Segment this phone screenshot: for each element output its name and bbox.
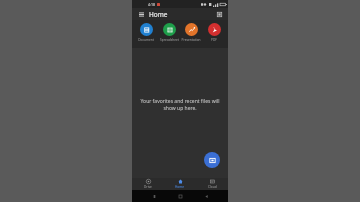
button[interactable]: Presentation	[180, 23, 202, 42]
button[interactable]: Back	[202, 192, 210, 200]
button[interactable]: Recent apps	[150, 192, 158, 200]
staticText: Cloud	[208, 185, 217, 189]
button[interactable]: Home	[176, 192, 184, 200]
button[interactable]: Home	[164, 178, 196, 190]
button[interactable]: Cloud	[196, 178, 228, 190]
staticText: Drive	[144, 185, 152, 189]
button[interactable]: Spreadsheet	[158, 23, 180, 42]
staticText: Presentation	[181, 38, 201, 42]
button[interactable]: Drive	[132, 178, 164, 190]
staticText: PDF	[211, 38, 217, 42]
button[interactable]: Open navigation menu	[137, 10, 145, 18]
button[interactable]: Create new file	[204, 152, 220, 168]
staticText: Home	[149, 10, 168, 19]
staticText: Document	[138, 38, 154, 42]
button[interactable]: PDF	[203, 23, 225, 42]
staticText: Your favorites and recent files will sho…	[136, 98, 224, 112]
button[interactable]: Search	[215, 10, 223, 18]
button[interactable]: Document	[135, 23, 157, 42]
staticText: Home	[175, 185, 185, 189]
staticText: Spreadsheet	[160, 38, 179, 42]
staticText: 4:18	[148, 2, 155, 7]
